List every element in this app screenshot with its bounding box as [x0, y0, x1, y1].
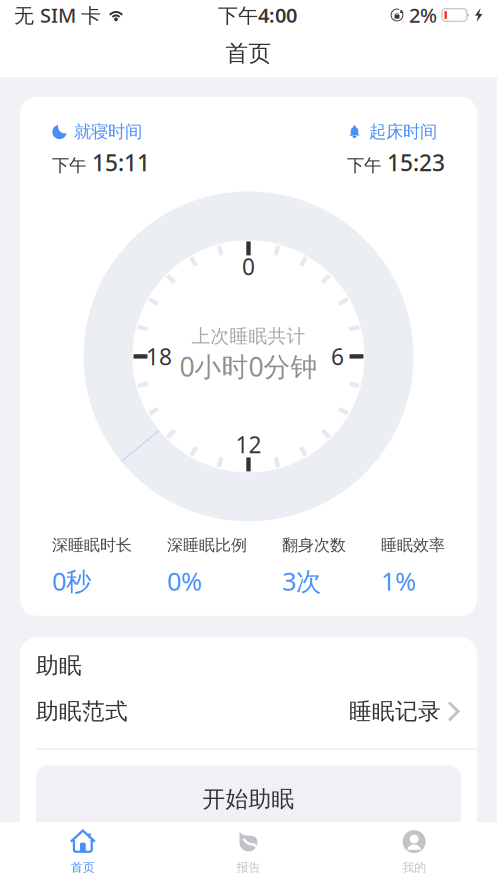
button[interactable]: 我的: [331, 822, 497, 883]
staticText: 我的: [402, 860, 426, 875]
staticText: 6: [331, 341, 344, 371]
staticText: 0: [242, 251, 255, 281]
staticText: 18: [146, 341, 172, 371]
staticText: 下午: [347, 155, 381, 176]
staticText: 助眠: [36, 652, 82, 679]
staticText: 报告: [236, 860, 260, 875]
staticText: 深睡眠比例: [167, 535, 247, 555]
staticText: 0小时0分钟: [179, 349, 317, 384]
button[interactable]: 报告: [166, 822, 331, 883]
staticText: 15:23: [387, 147, 445, 177]
staticText: 0%: [167, 564, 202, 598]
staticText: 1%: [381, 564, 416, 598]
staticText: 3次: [282, 564, 321, 598]
staticText: 下午: [52, 155, 86, 176]
button[interactable]: 首页: [0, 822, 166, 883]
staticText: 12: [235, 429, 261, 459]
staticText: 深睡眠时长: [52, 535, 132, 555]
button[interactable]: 助眠范式: [20, 679, 477, 748]
staticText: 无 SIM 卡: [14, 2, 101, 28]
staticText: 助眠范式: [36, 697, 128, 725]
staticText: 起床时间: [369, 121, 437, 142]
button[interactable]: 开始助眠: [36, 765, 461, 833]
staticText: 翻身次数: [282, 535, 346, 555]
staticText: 2%: [409, 2, 437, 28]
staticText: 首页: [225, 40, 271, 67]
staticText: 0秒: [52, 564, 91, 598]
staticText: 就寝时间: [74, 121, 142, 142]
staticText: 睡眠记录: [349, 697, 441, 725]
staticText: 开始助眠: [202, 785, 294, 813]
staticText: 首页: [71, 860, 95, 875]
staticText: 上次睡眠共计: [191, 325, 305, 348]
staticText: 下午4:00: [218, 2, 297, 28]
staticText: 15:11: [92, 147, 150, 177]
staticText: 睡眠效率: [381, 535, 445, 555]
